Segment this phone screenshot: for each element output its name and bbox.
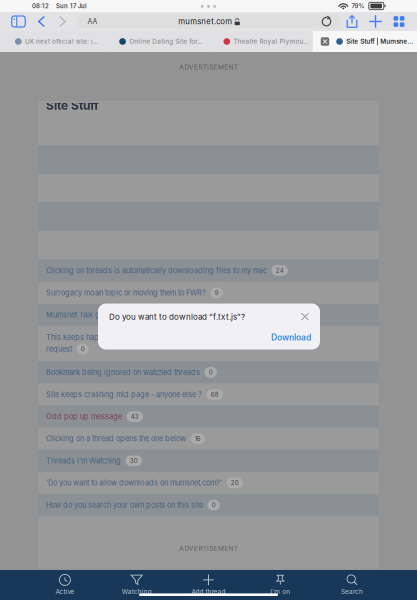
button[interactable]: Search [316, 570, 388, 600]
button[interactable]: Odd pop up message [38, 405, 379, 428]
staticText: 24 [276, 267, 284, 274]
staticText: Sun 17 Jul [56, 2, 87, 10]
button[interactable]: I'm on [244, 570, 316, 600]
button[interactable]: Online Dating Site for… [104, 31, 208, 52]
button[interactable]: Mumsnet Talk guidelines [38, 304, 379, 326]
staticText: Threads I'm Watching [46, 456, 121, 465]
staticText: Clicking on threads is automatically dow… [46, 266, 267, 275]
staticText: Surrogacy moan topic or moving them to F… [46, 288, 206, 297]
button[interactable]: Clicking on threads is automatically dow… [38, 259, 379, 282]
button[interactable]: Share [340, 12, 364, 31]
staticText: Search [341, 588, 363, 596]
staticText: 43 [131, 413, 139, 420]
staticText: Mumsnet Talk guidelines [46, 310, 131, 319]
staticText: 'Do you want to allow downloads on mumsn… [46, 478, 222, 487]
staticText: This keeps happening in response to a do… [46, 333, 216, 342]
staticText: Clicking on a thread opens the one below [46, 434, 186, 443]
staticText: request [46, 344, 72, 353]
staticText: Add thread [191, 588, 225, 596]
button[interactable]: Watching [101, 570, 173, 600]
staticText: Download [271, 332, 311, 342]
staticText: How do you search your own posts on this… [46, 500, 203, 509]
staticText: ADVERTISEMENT [179, 544, 238, 552]
button[interactable]: Clicking on a thread opens the one below [38, 428, 379, 450]
button[interactable]: UK next official site: i… [0, 31, 104, 52]
button[interactable]: Surrogacy moan topic or moving them to F… [38, 282, 379, 304]
staticText: Site Stuff [46, 98, 99, 113]
staticText: 9 [215, 289, 219, 297]
staticText: AA [87, 17, 97, 26]
staticText: Site Stuff | Mumsnet |… [346, 38, 413, 45]
staticText: Site keeps crashing mid page - anyone el… [46, 390, 202, 399]
button[interactable]: AA [77, 14, 340, 28]
staticText: I'm on [270, 588, 290, 596]
staticText: 79% [352, 2, 365, 10]
staticText: 30 [130, 457, 138, 464]
staticText: 0 [209, 369, 213, 376]
staticText: Online Dating Site for… [129, 38, 202, 45]
button[interactable]: Threads I'm Watching [38, 450, 379, 472]
staticText: mumsnet.com [178, 17, 232, 26]
staticText: 20 [231, 479, 239, 486]
staticText: 0 [212, 501, 216, 509]
staticText: 107 [140, 311, 149, 318]
button[interactable]: Close [299, 310, 311, 322]
staticText: Do you want to download “f.txt.js”? [109, 312, 245, 322]
staticText: 0 [81, 345, 85, 353]
button[interactable]: Back [31, 12, 52, 31]
staticText: Watching [122, 588, 152, 596]
button[interactable]: Add thread [173, 570, 244, 600]
staticText: Odd pop up message [46, 412, 122, 421]
staticText: 08:12 [32, 2, 49, 10]
button[interactable]: Theatre Royal Plymou… [208, 31, 313, 52]
button[interactable]: Bookmark being ignored on watched thread… [38, 361, 379, 383]
button[interactable]: 'Do you want to allow downloads on mumsn… [38, 472, 379, 494]
staticText: Active [55, 588, 74, 596]
staticText: 16 [195, 435, 201, 442]
staticText: UK next official site: i… [25, 38, 98, 45]
staticText: 68 [211, 391, 219, 398]
staticText: Bookmark being ignored on watched thread… [46, 368, 200, 377]
button[interactable]: Active [29, 570, 101, 600]
button[interactable]: Site keeps crashing mid page - anyone el… [38, 383, 379, 405]
button[interactable]: How do you search your own posts on this… [38, 494, 379, 516]
button[interactable]: Download [271, 332, 311, 342]
button[interactable]: Show all tabs [387, 12, 411, 31]
button[interactable]: Forward [52, 12, 73, 31]
button[interactable]: This keeps happening in response to a do… [38, 326, 379, 361]
staticText: ADVERTISEMENT [179, 63, 238, 71]
button[interactable]: Show sidebar [6, 12, 31, 31]
button[interactable]: Site Stuff | Mumsnet |… [313, 31, 417, 52]
staticText: Theatre Royal Plymou… [234, 38, 309, 45]
button[interactable]: New tab [364, 12, 387, 31]
